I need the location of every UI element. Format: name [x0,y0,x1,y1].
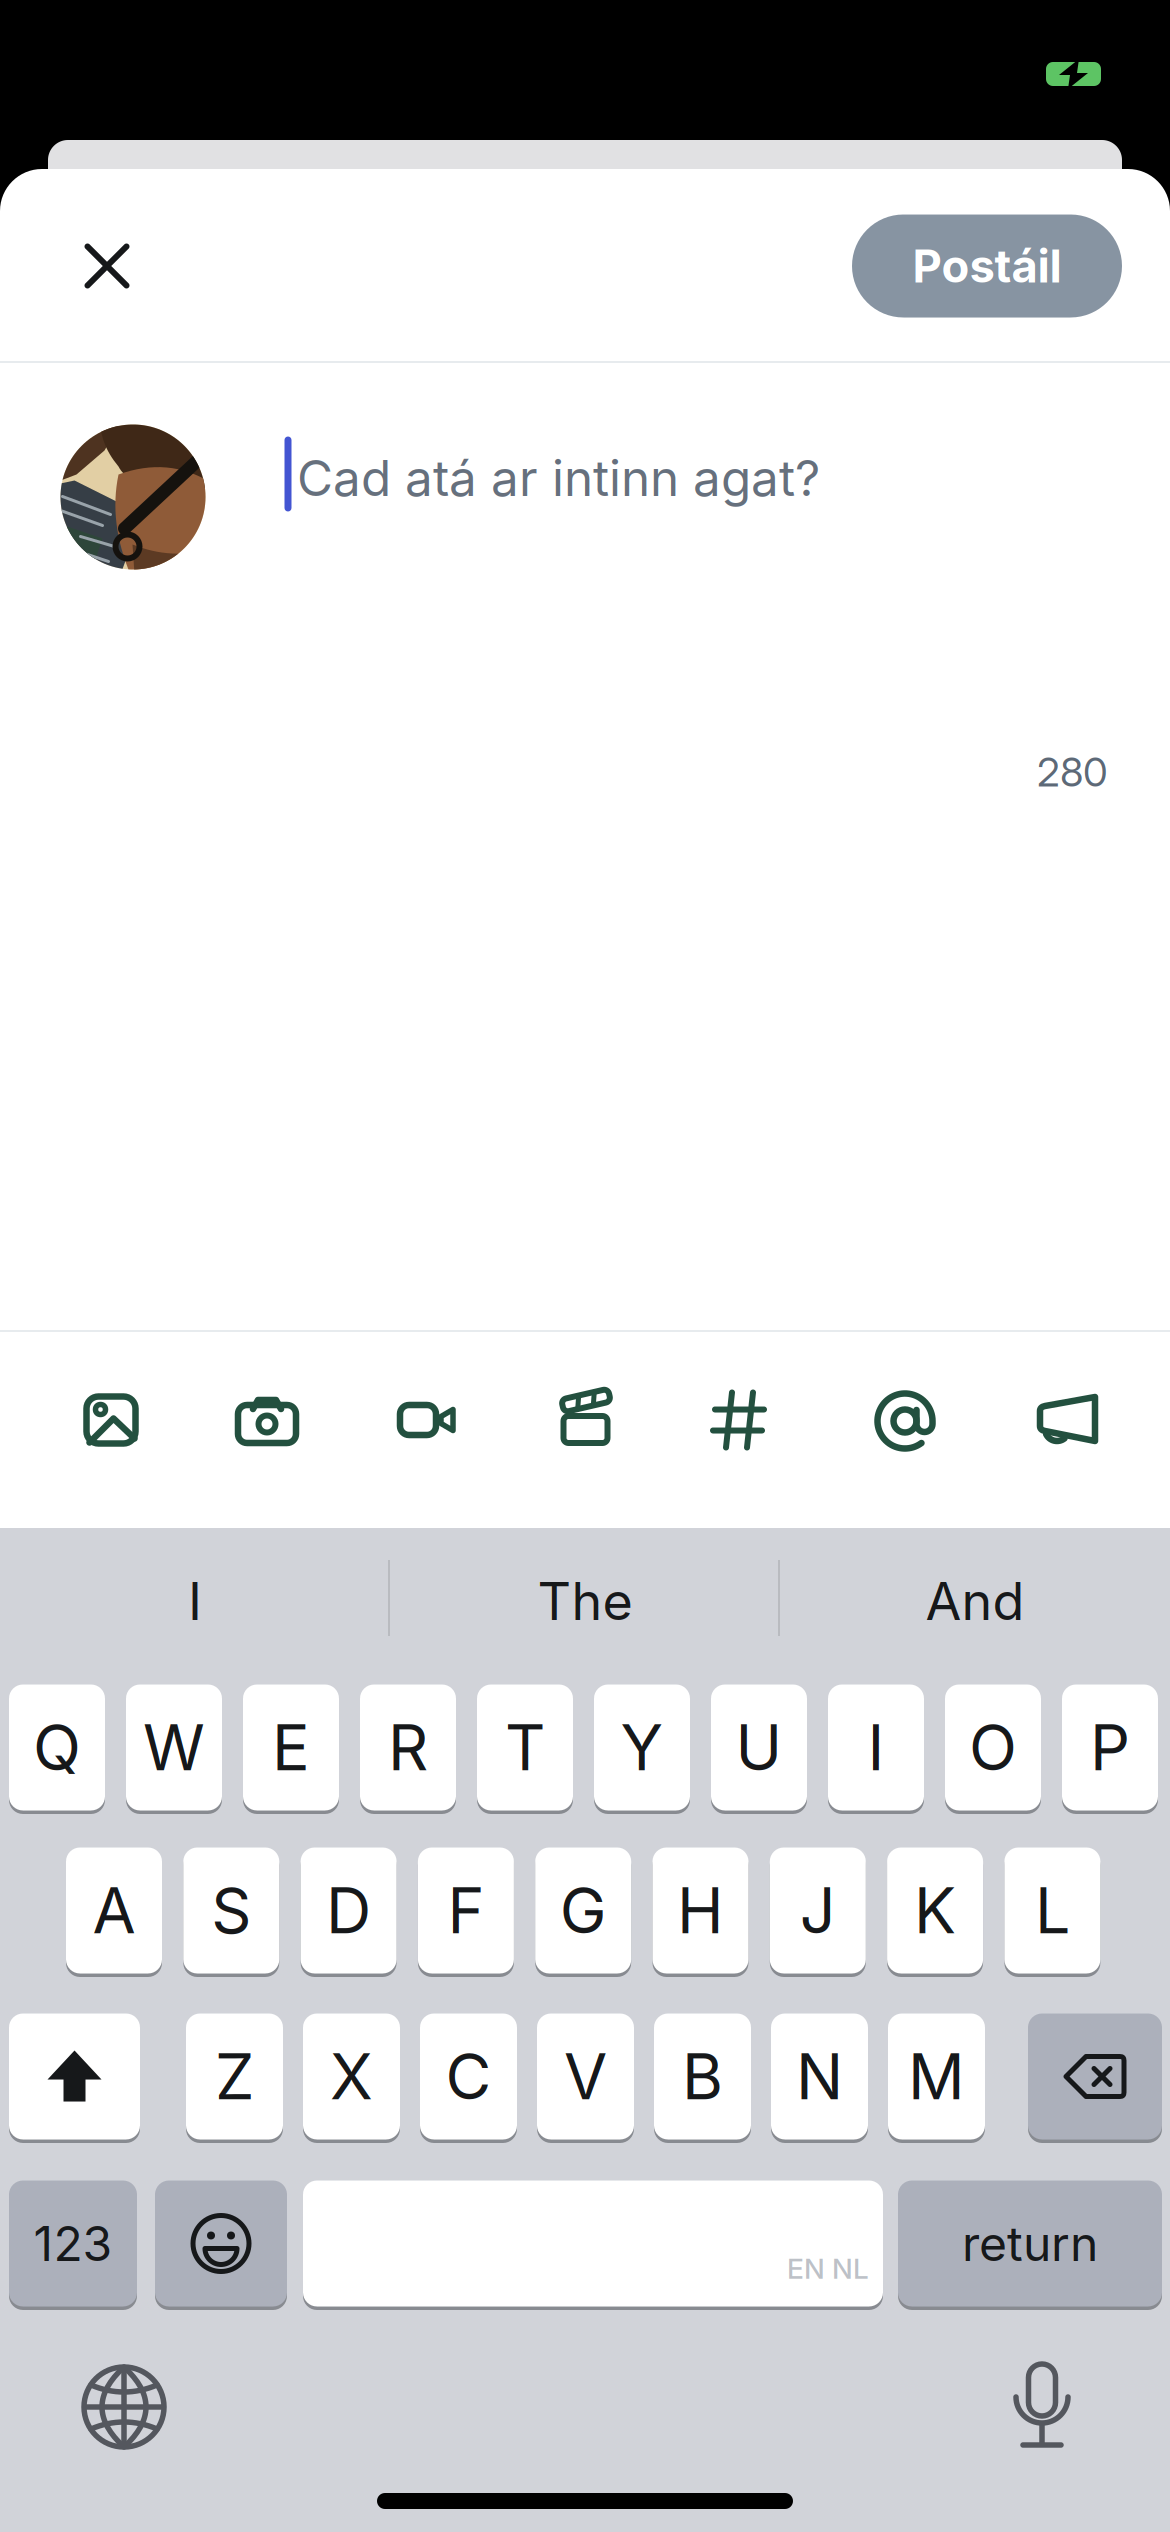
button[interactable]: A [66,1845,162,1975]
staticText: M [908,2039,965,2114]
button[interactable]: Record video [382,1385,474,1454]
staticText: Y [620,1710,663,1785]
staticText: T [505,1710,545,1785]
button[interactable]: I [828,1682,924,1812]
button[interactable]: And [785,1536,1165,1666]
staticText: X [330,2039,373,2114]
button[interactable]: D [301,1845,397,1975]
button[interactable]: Add GIF [542,1375,628,1461]
button[interactable]: Z [186,2011,283,2141]
button[interactable]: E [243,1682,339,1812]
staticText: 123 [33,2214,112,2273]
staticText: D [326,1873,371,1948]
button[interactable]: Mention [856,1372,954,1470]
staticText: L [1035,1873,1070,1948]
staticText: K [914,1873,956,1948]
button[interactable]: J [770,1845,866,1975]
staticText: W [143,1710,205,1785]
button[interactable]: W [126,1682,222,1812]
staticText: C [445,2039,491,2114]
staticText: U [735,1710,782,1785]
button[interactable]: C [420,2011,517,2141]
button[interactable]: M [888,2011,985,2141]
staticText: V [564,2039,607,2114]
button[interactable]: 123 [9,2178,137,2308]
button[interactable]: H [652,1845,748,1975]
staticText: EN NL [787,2252,869,2285]
button[interactable]: T [477,1682,573,1812]
staticText: P [1090,1710,1130,1785]
staticText: The [537,1569,632,1632]
button[interactable]: U [711,1682,807,1812]
staticText: N [796,2039,843,2114]
staticText: 280 [1037,748,1108,796]
button[interactable]: O [945,1682,1041,1812]
staticText: B [682,2039,723,2114]
staticText: Postáil [912,239,1061,293]
button[interactable]: L [1004,1845,1100,1975]
button[interactable]: Space [303,2178,883,2308]
button[interactable]: V [537,2011,634,2141]
staticText: R [388,1710,428,1785]
button[interactable]: N [771,2011,868,2141]
button[interactable]: Postáil [852,214,1122,317]
staticText: O [969,1710,1017,1785]
button[interactable]: Y [594,1682,690,1812]
button[interactable]: B [654,2011,751,2141]
staticText: Cad atá ar intinn agat? [297,448,820,508]
staticText: And [925,1569,1024,1632]
button[interactable]: Q [9,1682,105,1812]
button[interactable]: Take photo [219,1378,315,1462]
button[interactable]: Emoji [155,2178,287,2308]
staticText: J [800,1873,836,1948]
staticText: A [92,1873,135,1948]
button[interactable]: Delete [1028,2011,1162,2141]
button[interactable]: Next keyboard [80,2363,168,2451]
button[interactable]: Shift [9,2011,140,2141]
button[interactable]: P [1062,1682,1158,1812]
staticText: return [962,2214,1098,2273]
button[interactable]: X [303,2011,400,2141]
button[interactable]: R [360,1682,456,1812]
staticText: Z [215,2039,254,2114]
staticText: G [560,1873,607,1948]
staticText: I [867,1710,884,1785]
button[interactable]: G [535,1845,631,1975]
button[interactable]: I [5,1536,385,1666]
button[interactable]: S [183,1845,279,1975]
staticText: S [211,1873,251,1948]
staticText: E [272,1710,310,1785]
button[interactable]: Add hashtag [694,1373,784,1466]
button[interactable]: K [887,1845,983,1975]
button[interactable]: Announce [1019,1379,1117,1461]
button[interactable]: F [418,1845,514,1975]
button[interactable]: Add photo [65,1375,156,1464]
button[interactable]: Dictation [1015,2364,1069,2450]
button[interactable]: Close [54,213,159,318]
button[interactable]: return [898,2178,1162,2308]
button[interactable]: The [395,1536,775,1666]
staticText: H [677,1873,724,1948]
staticText: Q [33,1710,81,1785]
staticText: F [447,1873,484,1948]
staticText: I [188,1569,202,1632]
